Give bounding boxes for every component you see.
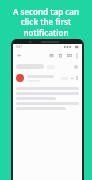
staticText: A second tap can click the first notific…	[3, 6, 89, 39]
button[interactable]: Reply	[70, 76, 74, 80]
button[interactable]: Back	[16, 52, 23, 59]
button[interactable]: Mark unread	[66, 52, 73, 59]
button[interactable]: Delete	[57, 52, 64, 59]
button[interactable]: Reply	[16, 72, 79, 84]
button[interactable]: Star	[16, 61, 79, 72]
button[interactable]: Star	[73, 64, 79, 70]
button[interactable]: Message options	[75, 74, 79, 82]
button[interactable]: More options	[75, 52, 79, 60]
staticText: 9:41	[16, 45, 22, 49]
button[interactable]: Archive	[48, 52, 55, 59]
